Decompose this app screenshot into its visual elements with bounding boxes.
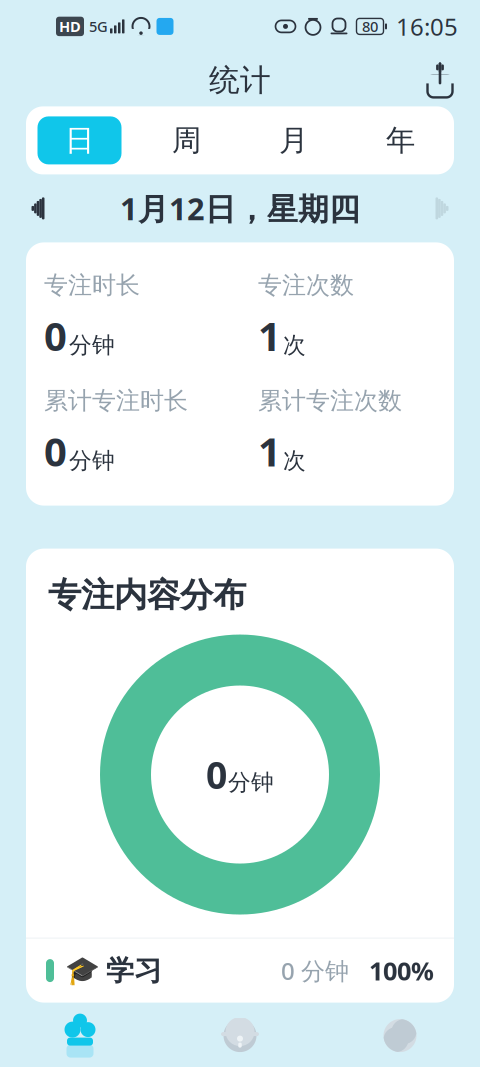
staticText: 累计专注时长	[44, 386, 188, 415]
staticText: 学习	[106, 953, 162, 988]
staticText: 分钟	[69, 331, 115, 359]
staticText: 年	[386, 122, 415, 158]
staticText: 0	[44, 424, 67, 478]
staticText: 专注次数	[258, 270, 354, 300]
staticText: 1月12日，星期四	[120, 188, 360, 229]
button[interactable]: 后一天	[420, 185, 464, 231]
staticText: 5G	[89, 17, 108, 36]
staticText: 🎓	[65, 955, 100, 987]
staticText: 100%	[369, 954, 434, 987]
button[interactable]: 🎓	[26, 939, 454, 1003]
button[interactable]: 白噪音	[160, 1003, 320, 1067]
staticText: 次	[283, 331, 306, 359]
button[interactable]: 年	[347, 106, 454, 174]
staticText: 统计	[209, 62, 271, 99]
button[interactable]: 统计	[320, 1003, 480, 1067]
button[interactable]: 月	[240, 106, 347, 174]
staticText: 专注时长	[44, 270, 140, 300]
staticText: 80	[362, 17, 378, 36]
staticText: 1	[258, 309, 281, 362]
button[interactable]: 分享	[414, 55, 466, 105]
button[interactable]: 专注	[0, 1003, 160, 1067]
staticText: 0 分钟	[281, 955, 349, 987]
staticText: 月	[279, 122, 308, 158]
staticText: 16:05	[396, 10, 458, 42]
staticText: 分钟	[69, 447, 115, 475]
staticText: 分钟	[228, 768, 274, 796]
staticText: 周	[172, 122, 201, 158]
staticText: 专注内容分布	[48, 575, 246, 615]
button[interactable]: 前一天	[16, 185, 60, 231]
staticText: 1	[258, 424, 281, 478]
staticText: 日	[65, 122, 94, 158]
staticText: 次	[283, 447, 306, 475]
staticText: 累计专注次数	[258, 386, 402, 415]
staticText: 0	[206, 750, 227, 799]
staticText: 0	[44, 309, 67, 362]
button[interactable]: 周	[133, 106, 240, 174]
staticText: HD	[59, 17, 81, 36]
button[interactable]: 日	[26, 106, 133, 174]
